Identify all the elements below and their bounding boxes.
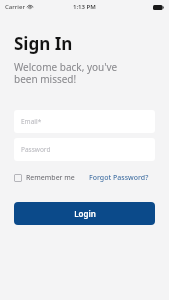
button[interactable]: Forgot Password? xyxy=(89,173,149,183)
button[interactable]: Password xyxy=(14,138,155,161)
staticText: Forgot Password? xyxy=(89,173,149,183)
staticText: Login xyxy=(74,208,96,219)
button[interactable]: Remember me xyxy=(14,173,75,183)
staticText: Sign In xyxy=(14,32,73,55)
staticText: Remember me xyxy=(26,173,75,183)
staticText: Welcome back, you've been missed! xyxy=(14,60,118,86)
button[interactable]: Email* xyxy=(14,110,155,133)
staticText: 1:13 PM xyxy=(73,3,96,11)
staticText: Carrier xyxy=(5,3,25,11)
staticText: Email* xyxy=(21,117,42,126)
button[interactable]: Login xyxy=(14,202,155,225)
staticText: Password xyxy=(21,145,51,154)
